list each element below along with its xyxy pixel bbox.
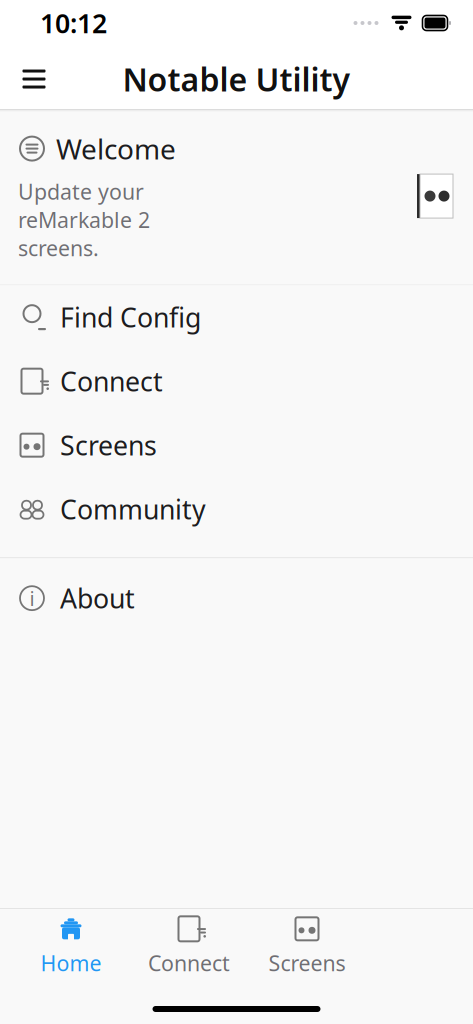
staticText: Connect [148,949,230,977]
button[interactable]: i [0,566,473,630]
staticText: Update your reMarkable 2 screens. [18,177,150,262]
staticText: Connect [60,363,163,399]
button[interactable]: Home [12,908,130,984]
staticText: 10:12 [40,5,107,41]
button[interactable]: Screens [248,908,366,984]
button[interactable]: Screens [0,413,473,477]
button[interactable]: Connect [130,908,248,984]
button[interactable]: Community [0,477,473,541]
staticText: Find Config [60,299,201,335]
button[interactable]: Connect [0,349,473,413]
staticText: Screens [60,427,157,463]
staticText: Screens [268,949,345,977]
button[interactable]: Find Config [0,285,473,349]
staticText: i [29,585,34,611]
button[interactable]: Menu [10,55,58,103]
staticText: Community [60,491,206,527]
staticText: Notable Utility [122,58,350,100]
staticText: About [60,580,135,616]
staticText: Welcome [56,130,176,167]
staticText: Home [40,949,101,977]
button[interactable]: Welcome [0,112,473,284]
